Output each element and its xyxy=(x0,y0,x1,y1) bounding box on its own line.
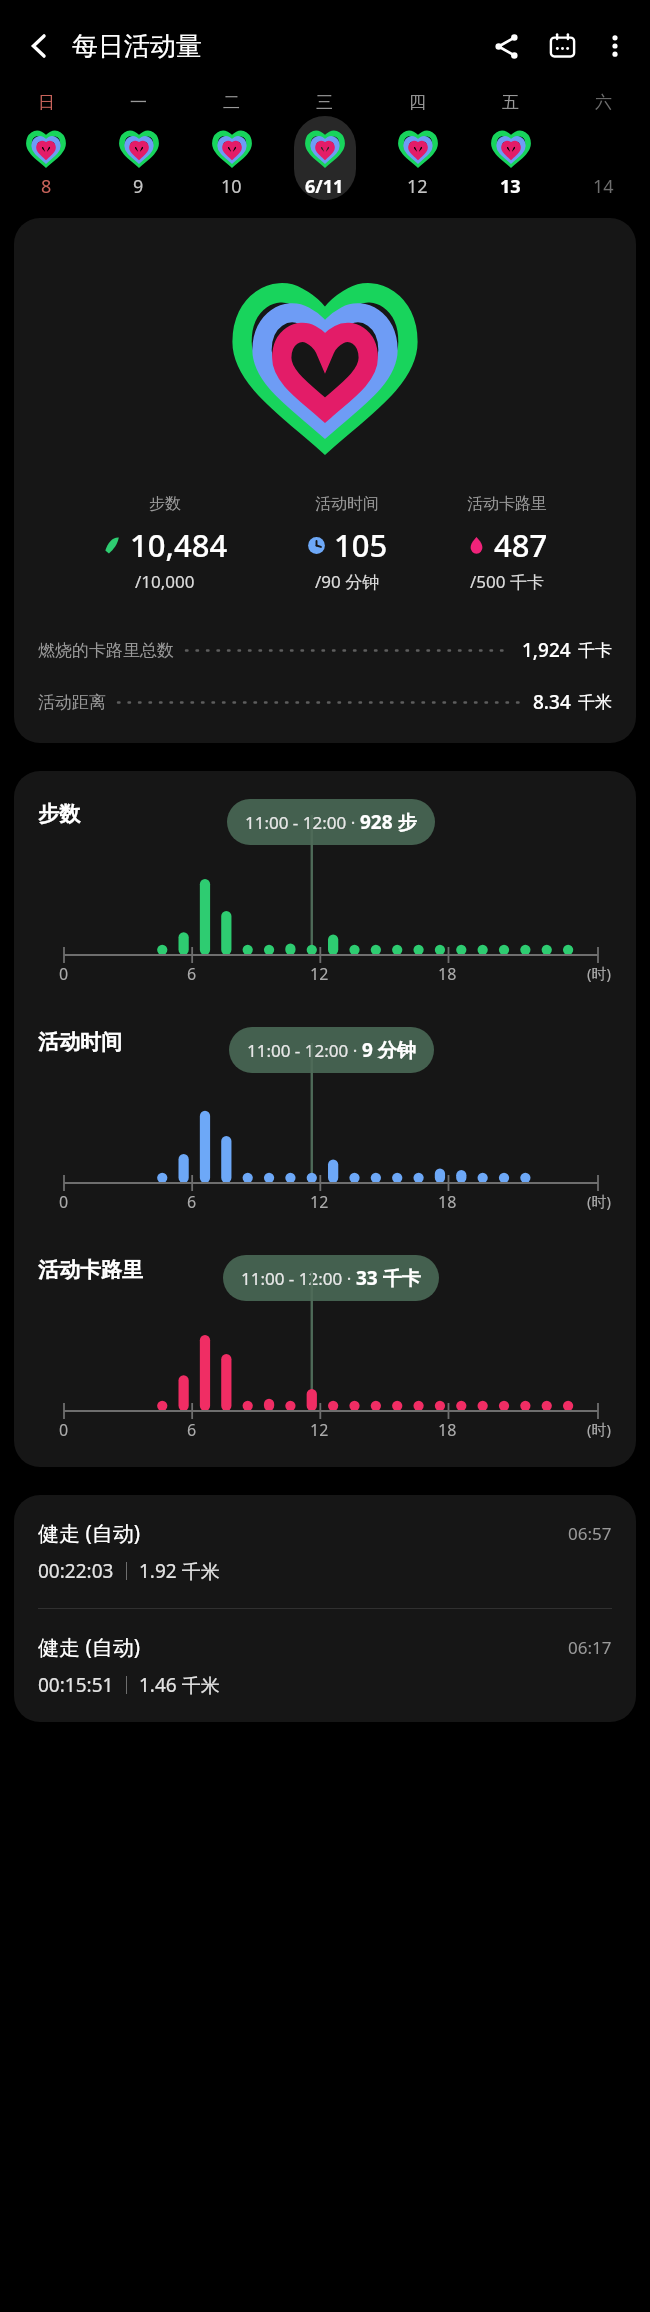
staticText: 105 xyxy=(334,524,388,566)
staticText: 一 xyxy=(130,92,147,113)
button[interactable]: 一 xyxy=(92,92,185,204)
button[interactable]: Back xyxy=(10,17,68,75)
staticText: 千卡 xyxy=(578,640,612,661)
staticText: 12 xyxy=(310,1191,329,1213)
staticText: 六 xyxy=(595,92,612,113)
button[interactable]: 步数 xyxy=(14,218,636,743)
staticText: 每日活动量 xyxy=(72,30,202,63)
staticText: 0 xyxy=(59,1419,69,1441)
staticText: /500 千卡 xyxy=(470,570,544,593)
staticText: 0 xyxy=(59,963,69,985)
staticText: 6 xyxy=(187,1419,197,1441)
staticText: 健走 (自动) xyxy=(38,1519,141,1548)
staticText: 00:15:51 xyxy=(38,1672,114,1698)
staticText: 00:22:03 xyxy=(38,1558,114,1584)
staticText: 活动时间 xyxy=(38,1029,122,1055)
staticText: 10 xyxy=(221,174,242,199)
staticText: 11:00 - 12:00 · xyxy=(245,811,360,834)
staticText: 1.46 千米 xyxy=(139,1672,220,1698)
staticText: 928 步 xyxy=(360,809,417,835)
staticText: 6 xyxy=(187,1191,197,1213)
button[interactable]: 健走 (自动) xyxy=(14,1495,636,1608)
staticText: 12 xyxy=(407,174,428,199)
staticText: 11:00 - 12:00 · xyxy=(247,1039,362,1062)
staticText: 06:57 xyxy=(568,1522,612,1545)
staticText: 18 xyxy=(438,1419,457,1441)
staticText: 6 xyxy=(187,963,197,985)
staticText: 6/11 xyxy=(305,174,344,199)
staticText: 06:17 xyxy=(568,1636,612,1659)
staticText: 日 xyxy=(38,92,55,113)
button[interactable]: Share xyxy=(478,18,534,74)
staticText: 14 xyxy=(593,174,614,199)
staticText: 三 xyxy=(316,92,333,113)
staticText: (时) xyxy=(587,963,612,983)
staticText: (时) xyxy=(587,1191,612,1211)
staticText: 活动时间 xyxy=(315,494,379,514)
staticText: 18 xyxy=(438,1191,457,1213)
staticText: 活动卡路里 xyxy=(467,494,547,514)
staticText: 活动卡路里 xyxy=(38,1257,143,1283)
staticText: 0 xyxy=(59,1191,69,1213)
staticText: 33 千卡 xyxy=(356,1265,421,1291)
staticText: /90 分钟 xyxy=(315,570,380,593)
staticText: 12 xyxy=(310,963,329,985)
staticText: 9 分钟 xyxy=(362,1037,416,1063)
button[interactable]: More options xyxy=(590,21,640,71)
button[interactable]: 步数 xyxy=(14,793,636,985)
staticText: 9 xyxy=(133,174,144,199)
staticText: 11:00 - 12:00 · xyxy=(241,1267,356,1290)
staticText: 二 xyxy=(223,92,240,113)
staticText: 四 xyxy=(409,92,426,113)
staticText: (时) xyxy=(587,1419,612,1439)
button[interactable]: 四 xyxy=(371,92,464,204)
staticText: 487 xyxy=(494,524,548,566)
staticText: 13 xyxy=(500,174,521,199)
button[interactable]: 五 xyxy=(464,92,557,204)
staticText: 18 xyxy=(438,963,457,985)
staticText: 12 xyxy=(310,1419,329,1441)
staticText: 8 xyxy=(41,174,52,199)
button[interactable]: 日 xyxy=(0,92,92,204)
staticText: 健走 (自动) xyxy=(38,1633,141,1662)
staticText: 五 xyxy=(502,92,519,113)
staticText: 8.34 xyxy=(533,689,571,715)
staticText: 1,924 xyxy=(522,637,571,663)
button[interactable]: 二 xyxy=(185,92,278,204)
button[interactable]: 活动卡路里 xyxy=(14,1249,636,1441)
staticText: 10,484 xyxy=(130,524,228,566)
button[interactable]: 六 xyxy=(557,92,650,204)
button[interactable]: 健走 (自动) xyxy=(14,1609,636,1722)
staticText: 1.92 千米 xyxy=(139,1558,220,1584)
staticText: /10,000 xyxy=(135,570,195,593)
staticText: 步数 xyxy=(38,801,80,827)
staticText: 燃烧的卡路里总数 xyxy=(38,640,174,661)
staticText: 活动距离 xyxy=(38,692,106,713)
staticText: 步数 xyxy=(149,494,181,514)
button[interactable]: 活动时间 xyxy=(14,1021,636,1213)
staticText: 千米 xyxy=(578,692,612,713)
button[interactable]: 三 xyxy=(278,92,371,204)
button[interactable]: Calendar xyxy=(534,18,590,74)
